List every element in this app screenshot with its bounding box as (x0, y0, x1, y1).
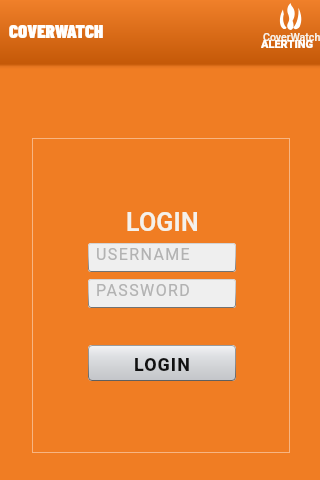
button[interactable]: PASSWORD (88, 279, 236, 308)
staticText: USERNAME (96, 245, 192, 264)
staticText: ALERTING (261, 38, 314, 51)
button[interactable]: LOGIN (88, 345, 236, 381)
staticText: COVERWATCH (9, 19, 104, 42)
staticText: LOGIN (134, 354, 191, 375)
staticText: LOGIN (126, 208, 199, 237)
button[interactable]: USERNAME (88, 243, 236, 272)
staticText: CoverWatch (263, 31, 320, 43)
staticText: PASSWORD (96, 281, 192, 300)
button[interactable]: CoverWatch Alerting logo (258, 0, 320, 50)
